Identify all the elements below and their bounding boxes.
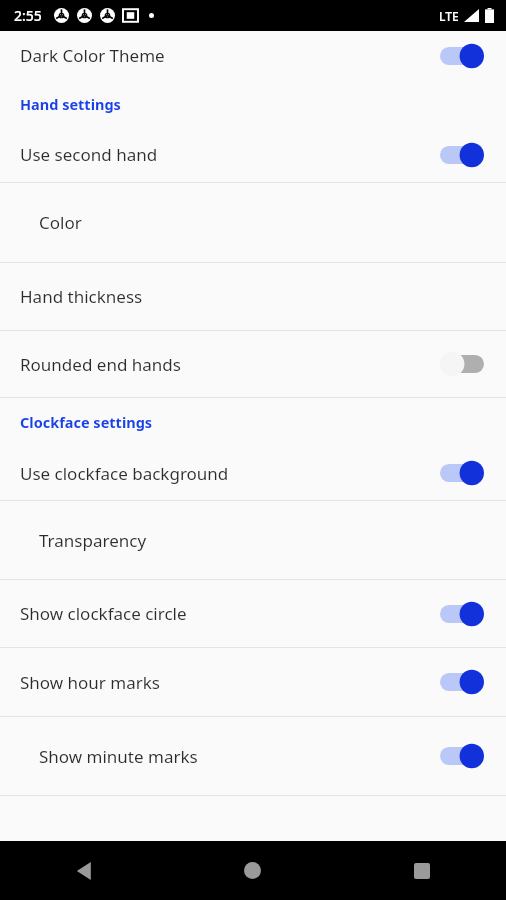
button[interactable]: Recent apps — [337, 841, 506, 900]
button[interactable]: Dark Color Theme — [0, 31, 506, 80]
button[interactable]: Show minute marks — [0, 717, 506, 795]
button[interactable]: Transparency — [0, 501, 506, 579]
button[interactable]: Toggle on — [440, 743, 484, 769]
staticText: Dark Color Theme — [20, 44, 440, 67]
button[interactable]: Rounded end hands — [0, 331, 506, 397]
button[interactable]: Home — [168, 841, 337, 900]
button[interactable]: Use second hand — [0, 127, 506, 182]
button[interactable]: Use clockface background — [0, 446, 506, 500]
staticText: Color — [39, 211, 484, 234]
button[interactable]: Show hour marks — [0, 648, 506, 716]
button[interactable]: Toggle on — [440, 142, 484, 168]
staticText: Use clockface background — [20, 462, 440, 485]
button[interactable]: Back — [0, 841, 168, 900]
button[interactable]: Toggle on — [440, 669, 484, 695]
staticText: Show minute marks — [39, 745, 440, 768]
staticText: Show hour marks — [20, 671, 440, 694]
staticText: Use second hand — [20, 143, 440, 166]
staticText: Clockface settings — [20, 412, 153, 432]
staticText: Hand settings — [20, 94, 121, 114]
button[interactable]: Toggle on — [440, 43, 484, 69]
staticText: Show clockface circle — [20, 602, 440, 625]
button[interactable]: Toggle on — [440, 601, 484, 627]
button[interactable]: Show clockface circle — [0, 580, 506, 647]
button[interactable]: Color — [0, 183, 506, 262]
staticText: Hand thickness — [20, 285, 484, 308]
button[interactable]: Toggle on — [440, 460, 484, 486]
button[interactable]: Hand thickness — [0, 263, 506, 330]
staticText: Transparency — [39, 529, 484, 552]
staticText: 2:55 — [14, 6, 42, 25]
button[interactable]: Toggle off — [440, 351, 484, 377]
staticText: LTE — [439, 8, 459, 24]
staticText: Rounded end hands — [20, 353, 440, 376]
